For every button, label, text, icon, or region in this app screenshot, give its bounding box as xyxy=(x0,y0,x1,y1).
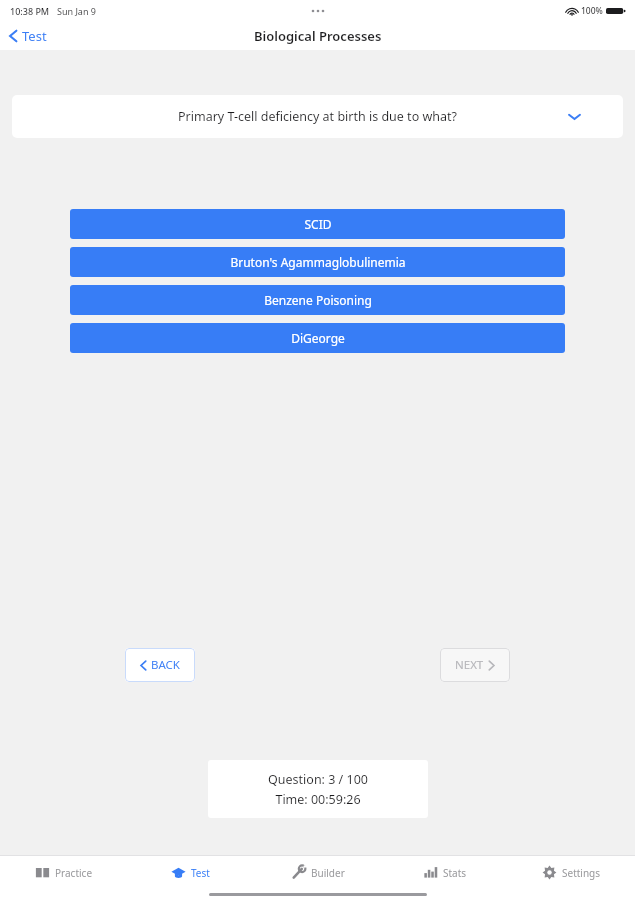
staticText: Stats xyxy=(443,866,467,880)
button[interactable]: Benzene Poisoning xyxy=(70,285,565,315)
staticText: NEXT xyxy=(455,657,484,673)
button[interactable]: Bruton's Agammaglobulinemia xyxy=(70,247,565,277)
button[interactable]: SCID xyxy=(70,209,565,239)
button[interactable]: Builder xyxy=(254,856,381,889)
staticText: Bruton's Agammaglobulinemia xyxy=(230,254,406,270)
staticText: Primary T-cell deficiency at birth is du… xyxy=(178,108,457,125)
staticText: Biological Processes xyxy=(254,27,382,45)
button[interactable]: BACK xyxy=(125,648,195,682)
staticText: Practice xyxy=(55,866,93,880)
staticText: Settings xyxy=(562,866,601,880)
staticText: Test xyxy=(22,27,47,45)
button[interactable]: DiGeorge xyxy=(70,323,565,353)
button[interactable]: Test xyxy=(127,856,254,889)
staticText: Time: 00:59:26 xyxy=(275,791,361,808)
button[interactable]: Primary T-cell deficiency at birth is du… xyxy=(12,95,623,138)
button[interactable]: Settings xyxy=(508,856,635,889)
staticText: 10:38 PM xyxy=(10,5,50,17)
button[interactable]: Test xyxy=(6,25,50,47)
staticText: 100% xyxy=(581,5,603,17)
staticText: Sun Jan 9 xyxy=(57,5,96,17)
staticText: Builder xyxy=(311,866,345,880)
staticText: Benzene Poisoning xyxy=(264,292,372,308)
staticText: SCID xyxy=(304,216,332,232)
staticText: DiGeorge xyxy=(291,330,345,346)
staticText: BACK xyxy=(151,657,180,673)
button[interactable]: Practice xyxy=(0,856,127,889)
button[interactable]: NEXT xyxy=(440,648,510,682)
staticText: Question: 3 / 100 xyxy=(268,771,368,788)
button[interactable]: Stats xyxy=(381,856,508,889)
staticText: Test xyxy=(191,866,210,880)
